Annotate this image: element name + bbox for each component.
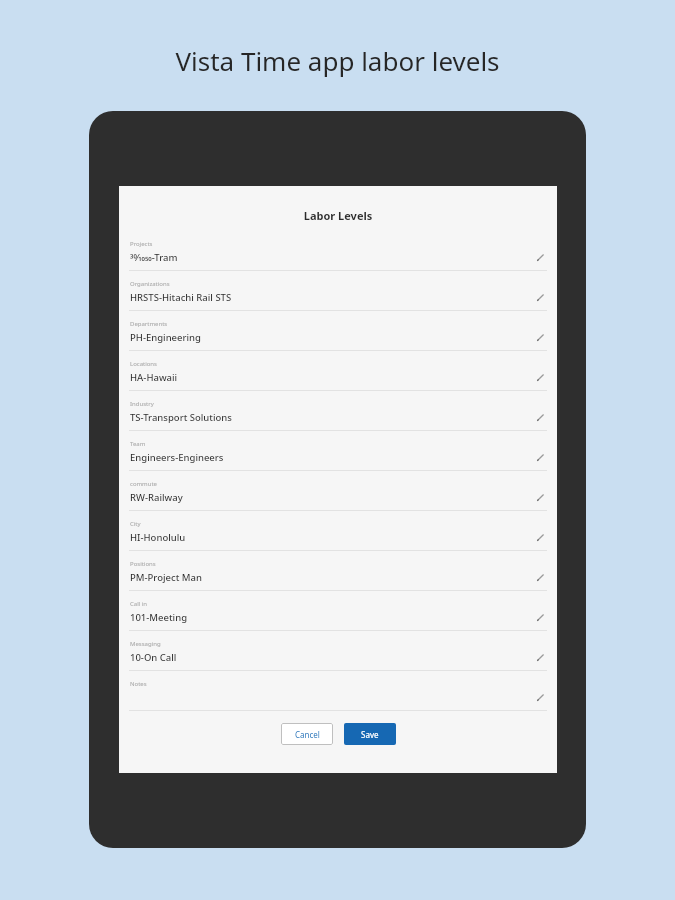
button[interactable]: Edit Call in [533, 610, 547, 624]
staticText: Notes [130, 680, 147, 688]
button[interactable]: Call in [119, 600, 557, 640]
staticText: TS-Transport Solutions [130, 411, 232, 424]
button[interactable]: Edit Positions [533, 570, 547, 584]
button[interactable]: Edit commute [533, 490, 547, 504]
staticText: PM-Project Man [130, 571, 202, 584]
button[interactable]: Cancel [281, 723, 333, 745]
staticText: Save [361, 729, 379, 740]
button[interactable]: Industry [119, 400, 557, 440]
button[interactable]: Save [344, 723, 396, 745]
staticText: 10-On Call [130, 651, 177, 664]
button[interactable]: Edit City [533, 530, 547, 544]
staticText: Call in [130, 600, 148, 608]
staticText: 101-Meeting [130, 611, 188, 624]
button[interactable]: Edit Messaging [533, 650, 547, 664]
button[interactable]: Projects [119, 240, 557, 280]
staticText: Cancel [295, 729, 320, 740]
staticText: RW-Railway [130, 491, 183, 504]
staticText: Engineers-Engineers [130, 451, 224, 464]
button[interactable]: Departments [119, 320, 557, 360]
staticText: HA-Hawaii [130, 371, 178, 384]
button[interactable]: commute [119, 480, 557, 520]
button[interactable]: Edit Departments [533, 330, 547, 344]
staticText: City [130, 520, 141, 528]
button[interactable]: Team [119, 440, 557, 480]
staticText: PH-Engineering [130, 331, 201, 344]
button[interactable]: Positions [119, 560, 557, 600]
button[interactable]: Notes [119, 680, 557, 720]
button[interactable]: City [119, 520, 557, 560]
staticText: Departments [130, 320, 168, 328]
staticText: Messaging [130, 640, 161, 648]
staticText: Vista Time app labor levels [0, 43, 675, 78]
staticText: HRSTS-Hitachi Rail STS [130, 291, 232, 304]
button[interactable]: Edit Projects [533, 250, 547, 264]
staticText: 30⁄1050-Tram [130, 251, 178, 264]
staticText: Positions [130, 560, 156, 568]
staticText: Organizations [130, 280, 170, 288]
staticText: commute [130, 480, 157, 488]
button[interactable]: Edit Team [533, 450, 547, 464]
button[interactable]: Edit Locations [533, 370, 547, 384]
button[interactable]: Messaging [119, 640, 557, 680]
button[interactable]: Organizations [119, 280, 557, 320]
staticText: Team [130, 440, 146, 448]
staticText: Projects [130, 240, 153, 248]
staticText: Industry [130, 400, 154, 408]
staticText: Labor Levels [119, 208, 557, 223]
button[interactable]: Edit Industry [533, 410, 547, 424]
staticText: Locations [130, 360, 157, 368]
button[interactable]: Edit Notes [533, 690, 547, 704]
button[interactable]: Locations [119, 360, 557, 400]
staticText: HI-Honolulu [130, 531, 186, 544]
button[interactable]: Edit Organizations [533, 290, 547, 304]
